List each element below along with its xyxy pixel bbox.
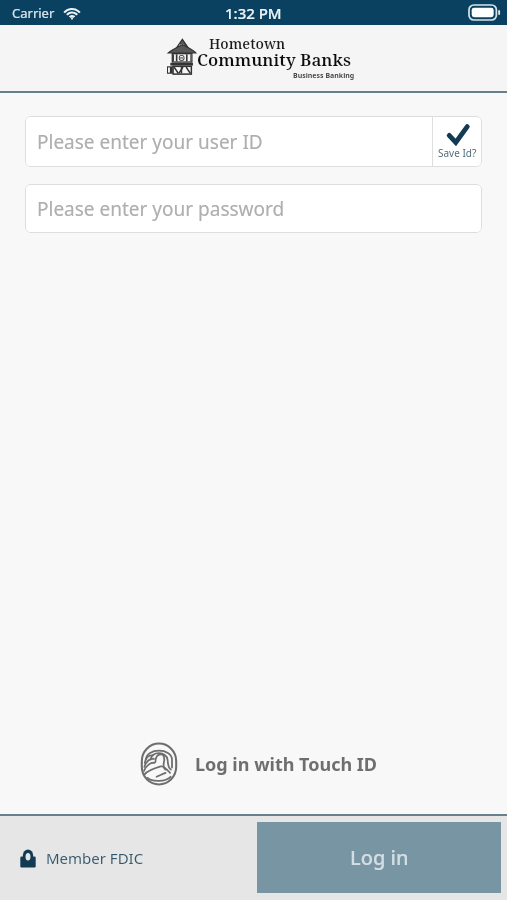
button[interactable]: Log in xyxy=(257,822,501,893)
staticText: Community Banks xyxy=(197,48,352,71)
button[interactable]: Save Id xyxy=(433,116,482,167)
staticText: Log in xyxy=(350,844,409,871)
button[interactable]: Member FDIC xyxy=(20,816,144,900)
staticText: Member FDIC xyxy=(46,848,144,868)
button[interactable]: Please enter your user ID xyxy=(25,116,432,167)
staticText: Please enter your user ID xyxy=(37,129,263,155)
staticText: Carrier xyxy=(12,4,55,22)
staticText: Save Id? xyxy=(438,146,477,160)
staticText: Please enter your password xyxy=(37,196,285,222)
button[interactable]: Log in with Touch ID xyxy=(139,741,378,787)
staticText: Hometown xyxy=(209,34,286,53)
staticText: Business Banking xyxy=(293,71,355,81)
staticText: Log in with Touch ID xyxy=(195,752,378,777)
button[interactable]: Please enter your password xyxy=(25,184,482,233)
staticText: 1:32 PM xyxy=(225,3,282,23)
